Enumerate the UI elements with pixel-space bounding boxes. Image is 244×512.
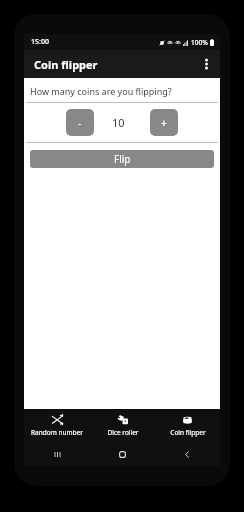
button[interactable]: +	[150, 109, 178, 136]
staticText: 10	[112, 115, 136, 130]
staticText: +	[161, 116, 167, 130]
staticText: Coin flipper	[34, 57, 98, 72]
button[interactable]: Flip	[30, 150, 214, 168]
button[interactable]: -	[66, 109, 94, 136]
staticText: How many coins are you flipping?	[30, 85, 172, 97]
button[interactable]: Recents	[24, 442, 90, 466]
staticText: -	[78, 116, 82, 130]
staticText: Flip	[114, 152, 131, 166]
staticText: Dice roller	[107, 428, 139, 437]
button[interactable]: Coin flipper	[155, 409, 220, 442]
button[interactable]: Dice roller	[90, 409, 155, 442]
staticText: 15:00	[31, 37, 49, 47]
button[interactable]: Home	[90, 442, 155, 466]
staticText: 100%	[191, 38, 208, 47]
staticText: Random number	[31, 428, 83, 437]
button[interactable]: More options	[192, 50, 220, 78]
button[interactable]: Back	[155, 442, 220, 466]
staticText: Coin flipper	[170, 428, 206, 437]
button[interactable]: Random number	[24, 409, 90, 442]
